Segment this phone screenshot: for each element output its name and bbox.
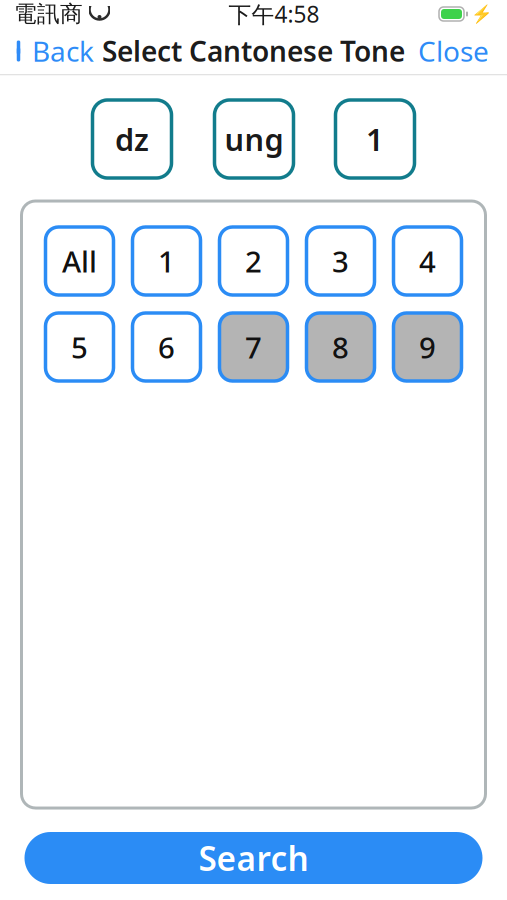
staticText: dz <box>115 119 149 159</box>
staticText: ung <box>224 119 283 159</box>
button[interactable]: Back <box>0 28 108 74</box>
staticText: Search <box>198 836 308 880</box>
staticText: 8 <box>332 327 349 366</box>
staticText: Select Cantonese Tone <box>102 32 405 70</box>
button[interactable]: 2 <box>219 227 287 295</box>
button[interactable]: 9 <box>393 313 461 381</box>
button[interactable]: 6 <box>132 313 200 381</box>
staticText: 4 <box>419 241 436 280</box>
staticText: Close <box>418 32 489 70</box>
staticText: 3 <box>332 241 349 280</box>
button[interactable]: 8 <box>306 313 374 381</box>
staticText: ⚡ <box>471 4 493 24</box>
staticText: 2 <box>245 241 262 280</box>
staticText: 6 <box>158 327 175 366</box>
button[interactable]: 4 <box>393 227 461 295</box>
button[interactable]: 1 <box>335 100 414 178</box>
button[interactable]: All <box>45 227 113 295</box>
button[interactable]: ung <box>214 100 293 178</box>
button[interactable]: 7 <box>219 313 287 381</box>
staticText: 電訊商 <box>14 0 83 28</box>
staticText: 9 <box>419 327 436 366</box>
staticText: 5 <box>71 327 88 366</box>
button[interactable]: 5 <box>45 313 113 381</box>
staticText: All <box>62 241 97 280</box>
staticText: 1 <box>158 241 175 280</box>
staticText: 7 <box>245 327 262 366</box>
staticText: Back <box>32 32 94 70</box>
button[interactable]: 1 <box>132 227 200 295</box>
button[interactable]: dz <box>92 100 171 178</box>
button[interactable]: Close <box>400 28 507 74</box>
staticText: 1 <box>366 119 384 159</box>
button[interactable]: 3 <box>306 227 374 295</box>
staticText: 下午4:58 <box>228 0 319 29</box>
button[interactable]: Search <box>24 832 482 884</box>
